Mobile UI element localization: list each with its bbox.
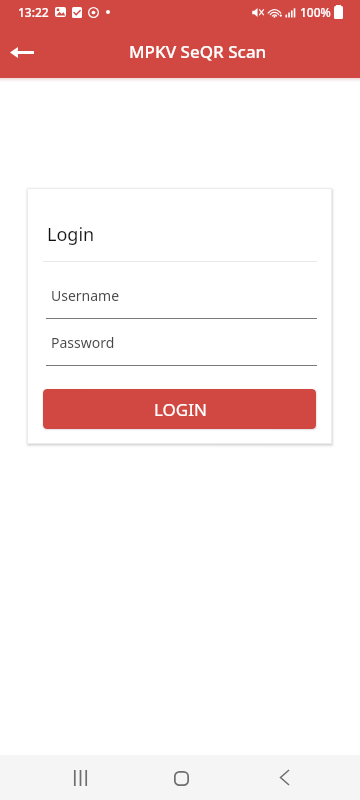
button[interactable]: Navigate up	[2, 32, 42, 72]
staticText: Login	[47, 222, 95, 247]
button[interactable]: LOGIN	[43, 389, 316, 429]
button[interactable]: Recent apps	[56, 755, 104, 800]
staticText: MPKV SeQR Scan	[129, 40, 267, 63]
staticText: Password	[51, 333, 115, 352]
staticText: Username	[51, 286, 120, 305]
button[interactable]: Home	[157, 756, 205, 800]
staticText: 100%	[300, 4, 331, 20]
staticText: LOGIN	[154, 398, 207, 421]
staticText: 13:22	[18, 4, 49, 20]
button[interactable]: Back	[260, 755, 308, 800]
